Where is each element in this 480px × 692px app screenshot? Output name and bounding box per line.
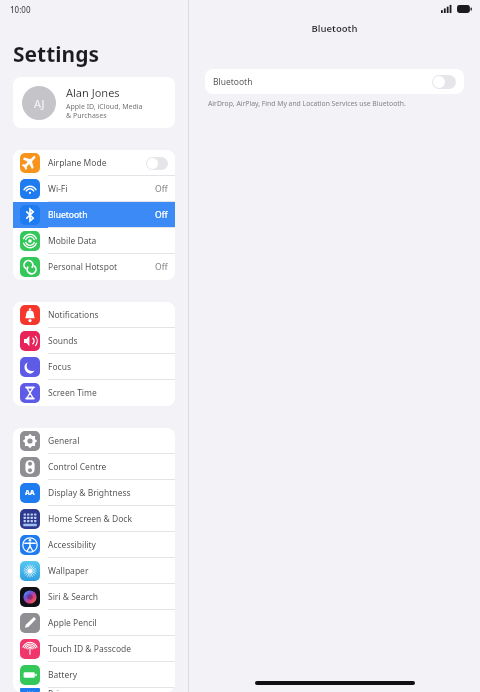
- staticText: Mobile Data: [48, 235, 97, 247]
- staticText: Touch ID & Passcode: [48, 643, 132, 655]
- staticText: Alan Jones: [66, 85, 120, 100]
- button[interactable]: Bluetooth: [13, 202, 175, 228]
- staticText: Off: [155, 183, 168, 195]
- staticText: Bluetooth: [311, 22, 358, 35]
- button[interactable]: Wi-Fi: [13, 176, 175, 202]
- button[interactable]: Mobile Data: [13, 228, 175, 254]
- staticText: Bluetooth: [48, 209, 88, 221]
- staticText: Wi-Fi: [48, 183, 68, 195]
- button[interactable]: Privacy: [13, 688, 175, 692]
- button[interactable]: Battery: [13, 662, 175, 688]
- staticText: AJ: [34, 96, 45, 111]
- staticText: Notifications: [48, 309, 99, 321]
- button[interactable]: AA: [13, 480, 175, 506]
- button[interactable]: Bluetooth toggle: [432, 75, 456, 89]
- staticText: Wallpaper: [48, 565, 89, 577]
- staticText: Battery: [48, 669, 78, 681]
- button[interactable]: Notifications: [13, 302, 175, 328]
- staticText: Personal Hotspot: [48, 261, 118, 273]
- staticText: Apple ID, iCloud, Media & Purchases: [66, 102, 143, 120]
- staticText: Siri & Search: [48, 591, 99, 603]
- staticText: AirDrop, AirPlay, Find My and Location S…: [208, 99, 406, 108]
- button[interactable]: AJ: [13, 77, 175, 128]
- staticText: Privacy: [48, 688, 77, 692]
- button[interactable]: Apple Pencil: [13, 610, 175, 636]
- staticText: Off: [155, 261, 168, 273]
- button[interactable]: Touch ID & Passcode: [13, 636, 175, 662]
- staticText: Display & Brightness: [48, 487, 131, 499]
- button[interactable]: Wallpaper: [13, 558, 175, 584]
- button[interactable]: Sounds: [13, 328, 175, 354]
- button[interactable]: Control Centre: [13, 454, 175, 480]
- button[interactable]: Siri & Search: [13, 584, 175, 610]
- staticText: Control Centre: [48, 461, 107, 473]
- staticText: Apple Pencil: [48, 617, 97, 629]
- button[interactable]: Bluetooth: [205, 69, 464, 94]
- button[interactable]: Home Screen & Dock: [13, 506, 175, 532]
- staticText: Accessibility: [48, 539, 96, 551]
- staticText: 10:00: [10, 4, 31, 15]
- button[interactable]: Focus: [13, 354, 175, 380]
- staticText: General: [48, 435, 80, 447]
- staticText: Airplane Mode: [48, 157, 107, 169]
- staticText: AA: [25, 488, 35, 498]
- button[interactable]: Airplane Mode toggle: [146, 157, 168, 170]
- staticText: Screen Time: [48, 387, 97, 399]
- staticText: Focus: [48, 361, 71, 373]
- staticText: Home Screen & Dock: [48, 513, 132, 525]
- button[interactable]: Airplane Mode: [13, 150, 175, 176]
- button[interactable]: General: [13, 428, 175, 454]
- staticText: Bluetooth: [213, 76, 253, 88]
- button[interactable]: Accessibility: [13, 532, 175, 558]
- staticText: Sounds: [48, 335, 78, 347]
- button[interactable]: Personal Hotspot: [13, 254, 175, 280]
- staticText: Settings: [13, 40, 100, 69]
- staticText: Off: [155, 209, 168, 221]
- button[interactable]: Screen Time: [13, 380, 175, 406]
